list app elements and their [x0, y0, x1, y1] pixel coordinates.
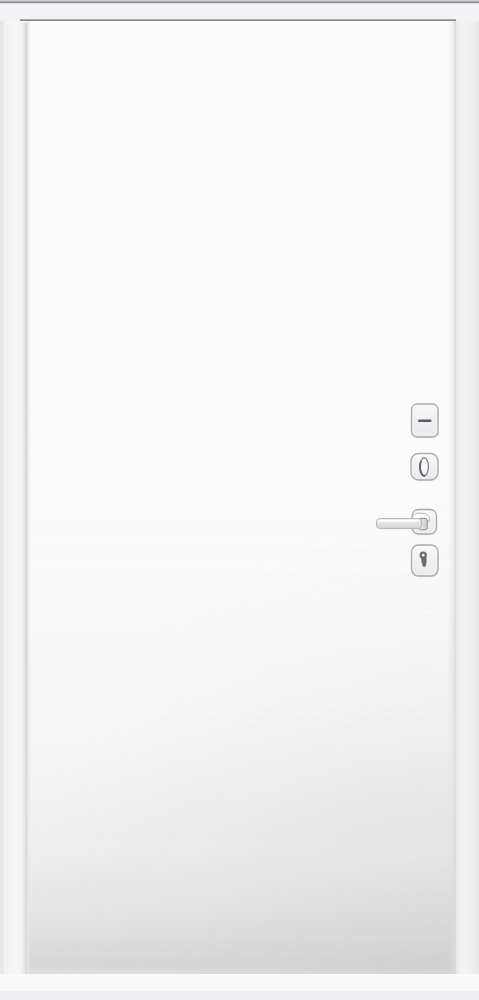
button[interactable]: Thumb turn lock [411, 454, 438, 481]
button[interactable]: Door handle [377, 510, 437, 535]
button[interactable]: Key cylinder lock [412, 545, 439, 576]
button[interactable]: Letter slot [412, 404, 439, 437]
